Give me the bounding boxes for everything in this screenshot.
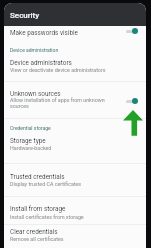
staticText: Hardware-backed xyxy=(10,145,52,151)
staticText: Display trusted CA certificates xyxy=(10,181,82,187)
button[interactable] xyxy=(4,83,146,117)
button[interactable] xyxy=(4,225,146,248)
staticText: Unknown sources xyxy=(10,90,61,98)
staticText: Allow installation of apps from unknown xyxy=(10,97,105,103)
staticText: Install certificates from storage xyxy=(10,214,84,220)
button[interactable]: Toggle setting xyxy=(124,96,141,107)
button[interactable] xyxy=(4,26,146,43)
staticText: Security xyxy=(10,11,40,20)
staticText: Device administration xyxy=(10,47,59,53)
staticText: Remove all certificates xyxy=(10,236,64,242)
button[interactable] xyxy=(4,133,146,162)
staticText: Storage type xyxy=(10,137,46,145)
button[interactable] xyxy=(4,3,146,26)
staticText: Clear credentials xyxy=(10,228,58,236)
button[interactable] xyxy=(4,197,146,223)
button[interactable] xyxy=(4,164,146,195)
button[interactable]: Toggle setting xyxy=(124,26,141,37)
staticText: Device administrators xyxy=(10,59,72,67)
staticText: Credential storage xyxy=(10,125,51,131)
staticText: Make passwords visible xyxy=(10,29,78,37)
staticText: sources xyxy=(10,103,29,109)
staticText: View or deactivate device administrators xyxy=(10,67,106,73)
button[interactable] xyxy=(4,56,146,80)
staticText: Trusted credentials xyxy=(10,173,65,181)
staticText: Install from storage xyxy=(10,205,66,213)
